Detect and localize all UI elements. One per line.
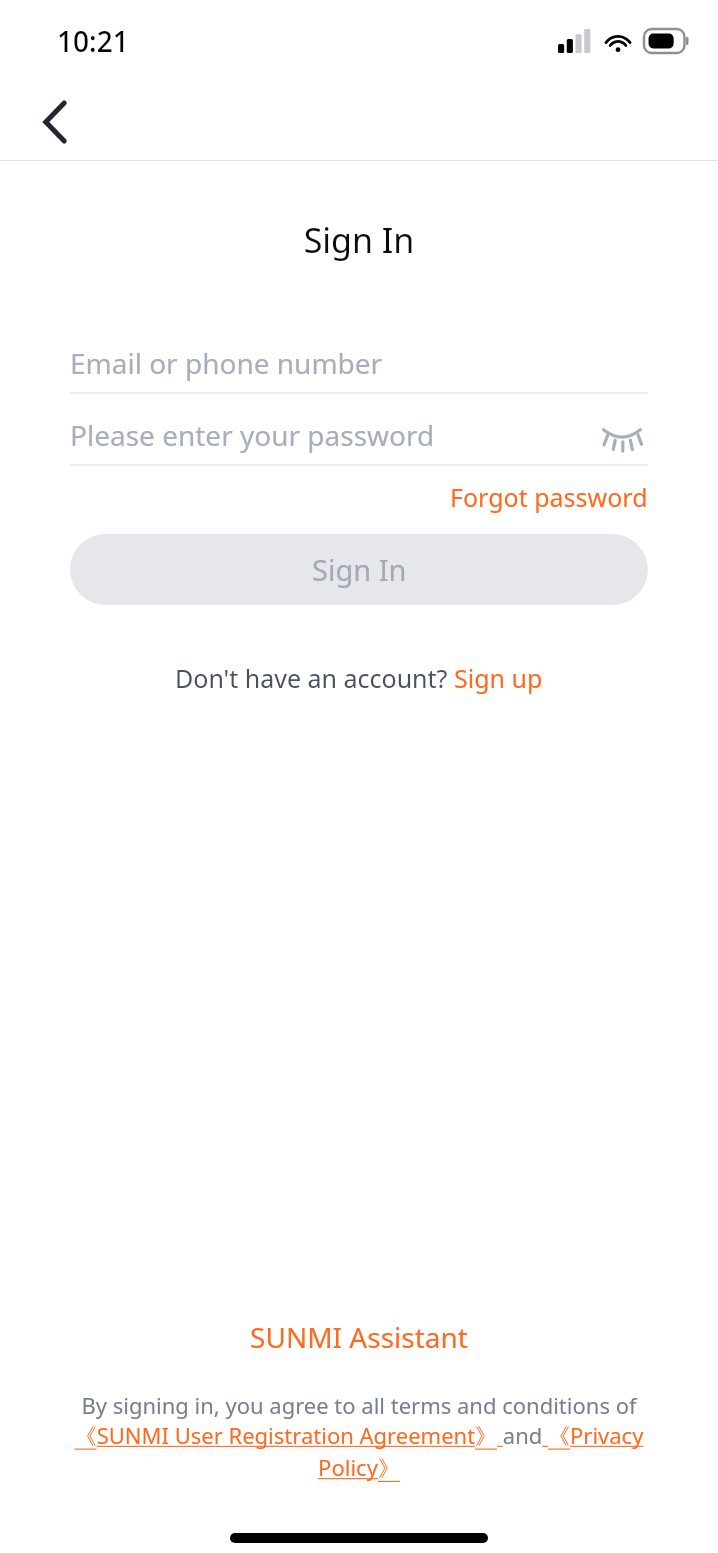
- button[interactable]: Email or phone number: [70, 334, 648, 394]
- staticText: Email or phone number: [70, 344, 383, 382]
- staticText: By signing in, you agree to all terms an…: [40, 1390, 678, 1483]
- button[interactable]: Forgot password: [450, 476, 648, 518]
- staticText: Sign up: [454, 661, 543, 695]
- staticText: Forgot password: [450, 480, 648, 514]
- button[interactable]: By signing in, you agree to all terms an…: [40, 1390, 678, 1483]
- staticText: Please enter your password: [70, 416, 435, 454]
- button[interactable]: Please enter your password: [70, 406, 648, 464]
- staticText: SUNMI Assistant: [0, 1318, 718, 1356]
- button[interactable]: Show password: [596, 409, 648, 461]
- staticText: Don't have an account?: [175, 661, 454, 695]
- staticText: 10:21: [57, 22, 129, 60]
- staticText: Sign In: [312, 550, 407, 589]
- button[interactable]: Sign up: [454, 661, 543, 695]
- staticText: Sign In: [0, 217, 718, 263]
- button[interactable]: Back: [24, 91, 86, 153]
- button[interactable]: Sign In: [70, 534, 648, 605]
